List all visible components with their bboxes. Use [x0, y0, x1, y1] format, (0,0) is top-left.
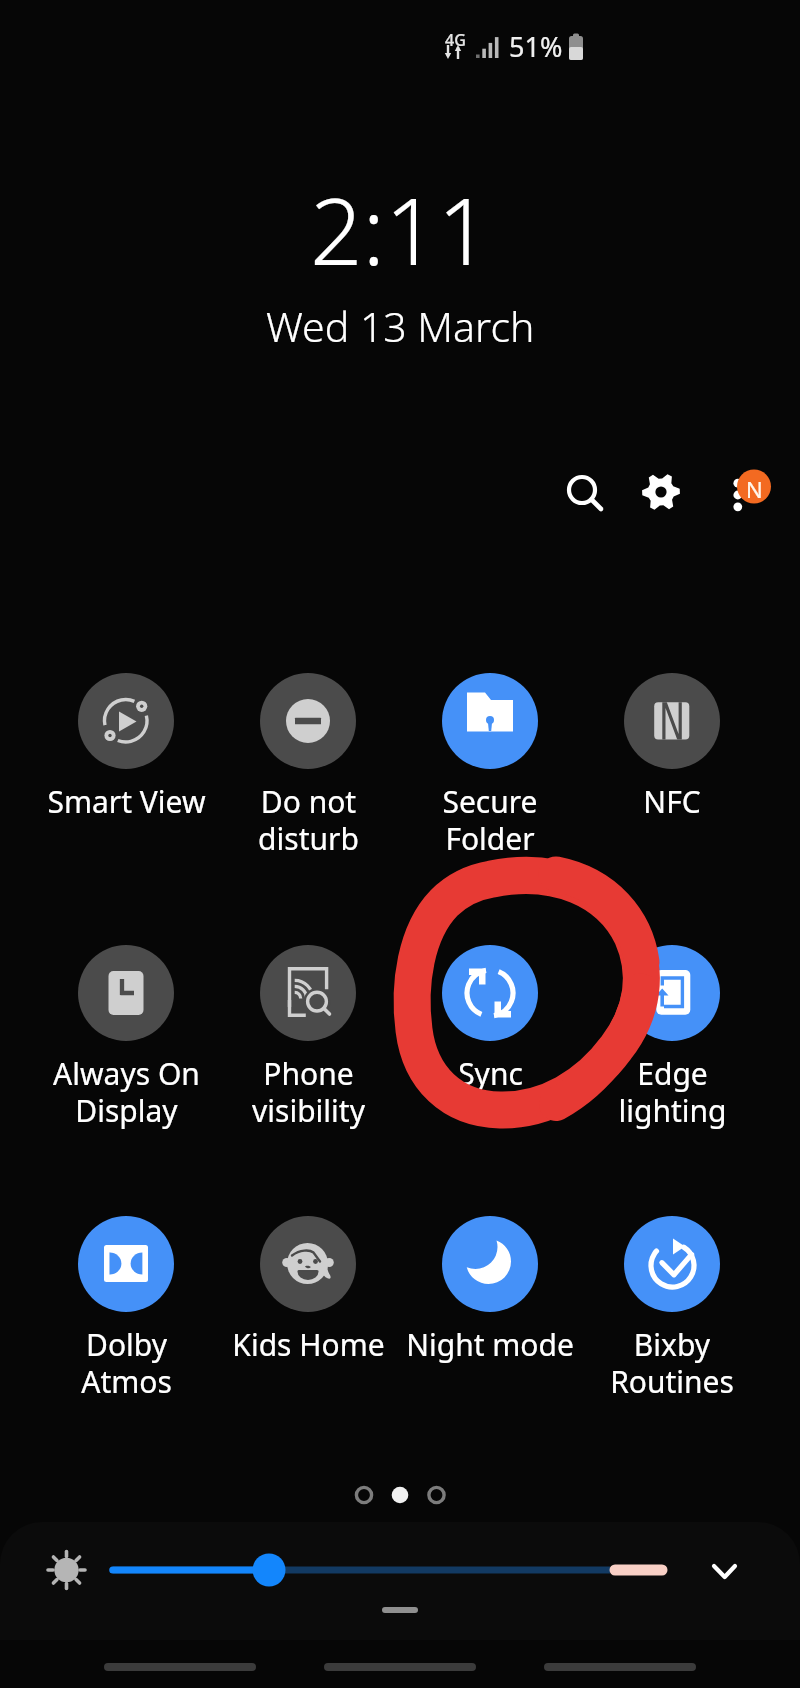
- button[interactable]: Auto brightness: [34, 1538, 99, 1603]
- staticText: Night mode: [406, 1324, 574, 1365]
- staticText: 2:11: [310, 167, 491, 292]
- button[interactable]: Page 3: [412, 1480, 448, 1510]
- button[interactable]: Sync: [399, 945, 581, 1094]
- button[interactable]: Brightness slider: [106, 1548, 676, 1592]
- staticText: Sync: [458, 1053, 523, 1094]
- staticText: 51%: [509, 28, 563, 65]
- button[interactable]: Do not disturb: [217, 673, 399, 859]
- staticText: 4G: [445, 29, 466, 51]
- staticText: Bixby Routines: [610, 1324, 734, 1402]
- button[interactable]: NFC: [581, 673, 763, 822]
- button[interactable]: Secure Folder: [399, 673, 581, 859]
- button[interactable]: Kids Home: [217, 1216, 399, 1365]
- staticText: NFC: [643, 781, 701, 822]
- button[interactable]: Night mode: [399, 1216, 581, 1365]
- staticText: Wed 13 March: [266, 298, 535, 354]
- button[interactable]: Smart View: [35, 673, 217, 822]
- staticText: Phone visibility: [252, 1053, 365, 1131]
- button[interactable]: More options: [712, 462, 776, 526]
- staticText: Do not disturb: [258, 781, 359, 859]
- button[interactable]: Page 1: [340, 1480, 376, 1510]
- button[interactable]: Bixby Routines: [581, 1216, 763, 1402]
- button[interactable]: Edge lighting: [581, 945, 763, 1131]
- button[interactable]: Phone visibility: [217, 945, 399, 1131]
- staticText: Edge lighting: [618, 1053, 727, 1131]
- staticText: Always On Display: [53, 1053, 200, 1131]
- button[interactable]: Always On Display: [35, 945, 217, 1131]
- staticText: N: [746, 474, 763, 504]
- button[interactable]: Settings: [633, 464, 689, 520]
- button[interactable]: Expand quick settings: [702, 1545, 754, 1597]
- staticText: Kids Home: [232, 1324, 385, 1365]
- button[interactable]: Page 2, selected: [376, 1480, 412, 1510]
- button[interactable]: [0, 1522, 800, 1640]
- staticText: Dolby Atmos: [81, 1324, 172, 1402]
- button[interactable]: Dolby Atmos: [35, 1216, 217, 1402]
- button[interactable]: Search: [558, 466, 614, 522]
- staticText: Smart View: [47, 781, 206, 822]
- staticText: Secure Folder: [442, 781, 538, 859]
